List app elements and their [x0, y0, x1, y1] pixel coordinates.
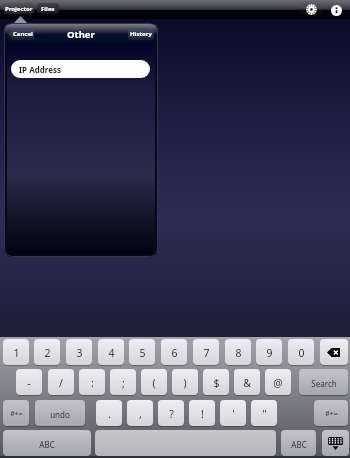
- button[interactable]: (: [141, 369, 167, 395]
- staticText: ABC: [39, 439, 55, 450]
- button[interactable]: Hide keyboard: [328, 437, 343, 450]
- button[interactable]: Projector: [4, 3, 34, 14]
- staticText: #+=: [10, 409, 23, 419]
- button[interactable]: ': [220, 400, 246, 426]
- staticText: (: [152, 376, 156, 390]
- staticText: Files: [41, 5, 55, 13]
- staticText: 6: [171, 346, 178, 360]
- button[interactable]: Settings: [299, 3, 323, 15]
- button[interactable]: ABC: [3, 430, 91, 456]
- button[interactable]: Search: [299, 369, 348, 395]
- button[interactable]: Backspace: [320, 339, 348, 365]
- button[interactable]: 0: [288, 339, 314, 365]
- button[interactable]: .: [96, 400, 122, 426]
- button[interactable]: #+=: [314, 400, 348, 426]
- staticText: !: [201, 407, 204, 421]
- staticText: :: [91, 376, 94, 390]
- staticText: 4: [108, 346, 115, 360]
- button[interactable]: [95, 430, 276, 456]
- button[interactable]: 7: [193, 339, 219, 365]
- staticText: ): [183, 376, 187, 390]
- staticText: Other: [67, 28, 95, 41]
- button[interactable]: 6: [161, 339, 187, 365]
- staticText: Cancel: [13, 30, 33, 38]
- staticText: 2: [44, 346, 51, 360]
- staticText: Search: [311, 378, 337, 389]
- staticText: ,: [139, 407, 142, 421]
- button[interactable]: ;: [110, 369, 136, 395]
- button[interactable]: ): [172, 369, 198, 395]
- staticText: ": [262, 407, 267, 421]
- staticText: 1: [13, 346, 20, 360]
- button[interactable]: History: [128, 28, 154, 40]
- staticText: @: [273, 376, 283, 390]
- staticText: 9: [266, 346, 273, 360]
- button[interactable]: @: [265, 369, 291, 395]
- staticText: ;: [122, 376, 125, 390]
- button[interactable]: &: [234, 369, 260, 395]
- staticText: 0: [298, 346, 305, 360]
- button[interactable]: 5: [129, 339, 155, 365]
- staticText: History: [130, 30, 152, 38]
- staticText: Projector: [5, 5, 33, 13]
- button[interactable]: ,: [127, 400, 153, 426]
- staticText: -: [27, 376, 31, 390]
- button[interactable]: 1: [3, 339, 29, 365]
- button[interactable]: undo: [35, 400, 85, 426]
- staticText: IP Address: [19, 64, 62, 75]
- staticText: ABC: [291, 439, 307, 450]
- button[interactable]: -: [16, 369, 42, 395]
- button[interactable]: ?: [158, 400, 184, 426]
- staticText: undo: [50, 409, 70, 420]
- button[interactable]: 4: [98, 339, 124, 365]
- button[interactable]: ": [251, 400, 277, 426]
- staticText: /: [59, 376, 63, 390]
- button[interactable]: Hide keyboard: [322, 430, 349, 456]
- staticText: 3: [76, 346, 83, 360]
- button[interactable]: Info: [331, 5, 342, 16]
- button[interactable]: 3: [66, 339, 92, 365]
- button[interactable]: $: [203, 369, 229, 395]
- staticText: 8: [235, 346, 242, 360]
- staticText: 7: [203, 346, 210, 360]
- button[interactable]: Files: [37, 3, 59, 14]
- button[interactable]: IP Address: [11, 60, 150, 78]
- button[interactable]: Cancel: [8, 28, 34, 40]
- button[interactable]: #+=: [3, 400, 29, 426]
- button[interactable]: 8: [225, 339, 251, 365]
- staticText: &: [243, 376, 251, 390]
- button[interactable]: :: [79, 369, 105, 395]
- button[interactable]: !: [189, 400, 215, 426]
- button[interactable]: 2: [34, 339, 60, 365]
- button[interactable]: Backspace: [327, 348, 341, 357]
- staticText: ?: [169, 407, 174, 421]
- button[interactable]: 9: [256, 339, 282, 365]
- button[interactable]: /: [48, 369, 74, 395]
- staticText: $: [213, 376, 220, 390]
- staticText: ': [232, 407, 235, 421]
- staticText: .: [108, 407, 111, 421]
- staticText: #+=: [325, 409, 338, 419]
- staticText: 5: [139, 346, 146, 360]
- button[interactable]: ABC: [281, 430, 316, 456]
